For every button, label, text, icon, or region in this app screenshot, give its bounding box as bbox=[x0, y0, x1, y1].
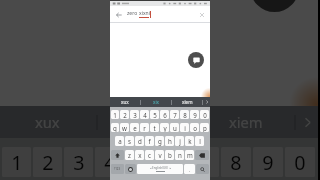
staticText: xix bbox=[137, 112, 157, 132]
button[interactable]: 9 bbox=[253, 147, 283, 177]
button[interactable]: 0 bbox=[200, 110, 209, 119]
button[interactable]: Shift bbox=[111, 150, 124, 160]
button[interactable]: xiem bbox=[172, 97, 202, 107]
staticText: 3 bbox=[133, 111, 137, 119]
staticText: d bbox=[138, 137, 142, 145]
button[interactable]: w bbox=[120, 123, 129, 132]
staticText: xixni bbox=[139, 10, 150, 17]
staticText: f bbox=[148, 137, 151, 145]
staticText: h bbox=[168, 137, 172, 145]
button[interactable]: Backspace bbox=[195, 150, 209, 160]
button[interactable]: v bbox=[155, 150, 164, 160]
button[interactable]: e bbox=[130, 123, 139, 132]
staticText: o bbox=[193, 124, 197, 132]
button[interactable]: ?123 bbox=[111, 164, 124, 174]
staticText: xux bbox=[121, 99, 129, 105]
button[interactable]: s bbox=[125, 136, 134, 146]
button[interactable]: q bbox=[111, 123, 119, 132]
button[interactable]: 8 bbox=[221, 147, 251, 177]
staticText: 0 bbox=[294, 149, 306, 176]
button[interactable]: 1 bbox=[111, 110, 119, 119]
button[interactable]: i bbox=[180, 123, 189, 132]
button[interactable]: z bbox=[125, 150, 134, 160]
button[interactable]: Emoji bbox=[125, 164, 136, 174]
staticText: xix bbox=[153, 99, 160, 105]
staticText: 4 bbox=[104, 149, 116, 176]
button[interactable]: 5 bbox=[150, 110, 159, 119]
button[interactable]: y bbox=[160, 123, 169, 132]
staticText: q bbox=[113, 124, 117, 132]
button[interactable]: 4 bbox=[140, 110, 149, 119]
button[interactable]: l bbox=[195, 136, 204, 146]
staticText: 5 bbox=[153, 111, 157, 119]
staticText: r bbox=[143, 124, 146, 132]
button[interactable]: 6 bbox=[160, 110, 169, 119]
staticText: 6 bbox=[166, 149, 178, 176]
button[interactable]: 3 bbox=[64, 147, 93, 177]
staticText: 8 bbox=[230, 149, 242, 176]
staticText: s bbox=[128, 137, 131, 145]
button[interactable]: r bbox=[140, 123, 149, 132]
button[interactable]: o bbox=[190, 123, 199, 132]
staticText: i bbox=[184, 124, 186, 132]
button[interactable]: xux bbox=[0, 106, 96, 138]
button[interactable]: 9 bbox=[190, 110, 199, 119]
button[interactable]: xiem bbox=[197, 106, 294, 138]
staticText: g bbox=[158, 137, 162, 145]
staticText: 9 bbox=[262, 149, 274, 176]
button[interactable]: Voice search bbox=[188, 52, 204, 68]
button[interactable]: k bbox=[185, 136, 194, 146]
button[interactable]: j bbox=[175, 136, 184, 146]
button[interactable]: m bbox=[185, 150, 194, 160]
staticText: m bbox=[187, 151, 193, 159]
staticText: 9 bbox=[193, 111, 197, 119]
staticText: ?123 bbox=[114, 167, 121, 171]
button[interactable]: xix bbox=[98, 106, 195, 138]
staticText: x bbox=[138, 151, 142, 159]
button[interactable]: f bbox=[145, 136, 154, 146]
button[interactable]: 7 bbox=[189, 147, 219, 177]
staticText: 7 bbox=[198, 149, 210, 176]
button[interactable]: Voice search bbox=[250, 0, 299, 12]
button[interactable]: 6 bbox=[157, 147, 187, 177]
button[interactable]: More suggestions bbox=[296, 106, 318, 138]
button[interactable]: 3 bbox=[130, 110, 139, 119]
staticText: , bbox=[189, 167, 190, 172]
staticText: e bbox=[133, 124, 137, 132]
staticText: c bbox=[148, 151, 151, 159]
staticText: xiem bbox=[229, 112, 263, 132]
button[interactable]: Back bbox=[113, 9, 124, 20]
button[interactable]: p bbox=[200, 123, 209, 132]
staticText: ◂ bbox=[150, 166, 152, 170]
staticText: y bbox=[163, 124, 167, 132]
button[interactable]: 1 bbox=[2, 147, 31, 177]
button[interactable]: 8 bbox=[180, 110, 189, 119]
button[interactable]: x bbox=[135, 150, 144, 160]
button[interactable]: h bbox=[165, 136, 174, 146]
button[interactable]: d bbox=[135, 136, 144, 146]
button[interactable]: 7 bbox=[170, 110, 179, 119]
button[interactable]: 2 bbox=[120, 110, 129, 119]
staticText: a bbox=[118, 137, 122, 145]
button[interactable]: b bbox=[165, 150, 174, 160]
button[interactable]: c bbox=[145, 150, 154, 160]
button[interactable]: t bbox=[150, 123, 159, 132]
staticText: u bbox=[173, 124, 177, 132]
button[interactable]: 4 bbox=[95, 147, 124, 177]
button[interactable]: 0 bbox=[285, 147, 315, 177]
button[interactable]: Clear search bbox=[196, 9, 207, 20]
button[interactable]: , bbox=[184, 164, 195, 174]
staticText: n bbox=[178, 151, 182, 159]
button[interactable]: 2 bbox=[33, 147, 62, 177]
button[interactable]: More suggestions bbox=[203, 97, 210, 107]
button[interactable]: Space bbox=[137, 164, 183, 174]
button[interactable]: u bbox=[170, 123, 179, 132]
button[interactable]: 5 bbox=[126, 147, 155, 177]
button[interactable]: n bbox=[175, 150, 184, 160]
button[interactable]: a bbox=[115, 136, 124, 146]
button[interactable]: xux bbox=[110, 97, 140, 107]
staticText: xiem bbox=[182, 99, 193, 105]
button[interactable]: xix bbox=[141, 97, 171, 107]
button[interactable]: g bbox=[155, 136, 164, 146]
button[interactable]: Search bbox=[196, 164, 209, 174]
